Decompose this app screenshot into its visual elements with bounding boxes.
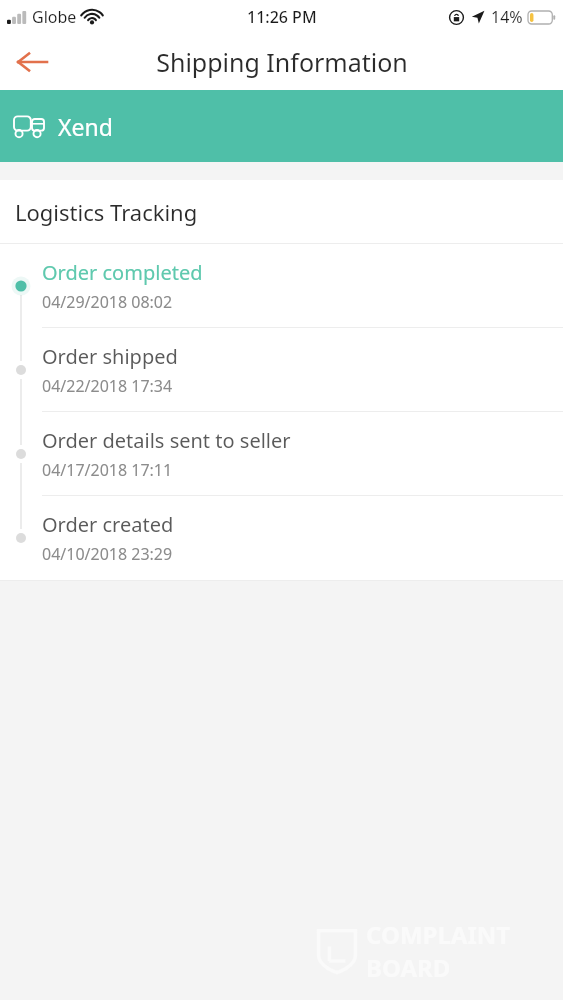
staticText: 04/29/2018 08:02 <box>42 291 173 313</box>
staticText: 04/17/2018 17:11 <box>42 459 173 481</box>
button[interactable]: Order shipped <box>0 328 563 412</box>
button[interactable]: Xend <box>0 90 563 162</box>
staticText: Order created <box>42 511 174 538</box>
button[interactable]: Back <box>6 36 58 88</box>
staticText: Order details sent to seller <box>42 427 291 454</box>
staticText: 04/22/2018 17:34 <box>42 375 173 397</box>
staticText: Xend <box>58 111 113 142</box>
staticText: Order shipped <box>42 343 178 370</box>
staticText: Globe <box>32 6 77 28</box>
staticText: 11:26 PM <box>247 6 317 28</box>
staticText: Logistics Tracking <box>15 197 198 227</box>
staticText: 14% <box>491 6 523 28</box>
staticText: 04/10/2018 23:29 <box>42 543 173 565</box>
button[interactable]: Order completed <box>0 244 563 328</box>
button[interactable]: Order details sent to seller <box>0 412 563 496</box>
staticText: Shipping Information <box>156 45 408 79</box>
staticText: Order completed <box>42 259 203 286</box>
button[interactable]: Order created <box>0 496 563 580</box>
